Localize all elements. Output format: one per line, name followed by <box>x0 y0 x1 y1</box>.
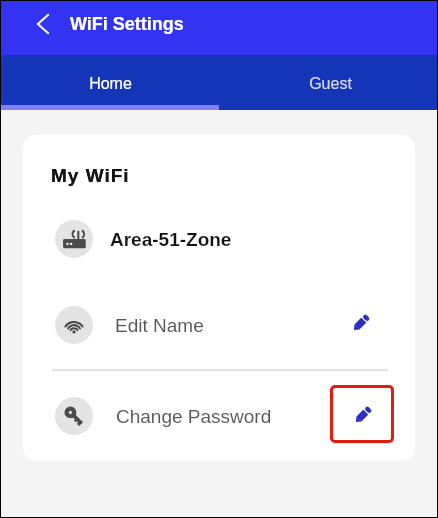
button[interactable]: Area-51-Zone <box>23 217 415 261</box>
button[interactable]: Edit name <box>345 307 377 339</box>
button[interactable]: Edit Name <box>23 303 415 347</box>
button[interactable]: Guest <box>219 55 437 110</box>
staticText: Change Password <box>116 406 272 427</box>
staticText: WiFi Settings <box>70 14 184 34</box>
button[interactable]: Change password <box>330 385 394 443</box>
staticText: Home <box>89 75 132 93</box>
staticText: My WiFi <box>51 165 130 186</box>
button[interactable]: Change Password <box>23 394 415 438</box>
button[interactable]: Back <box>24 6 60 42</box>
staticText: My WiFi <box>51 165 130 186</box>
staticText: Guest <box>309 75 352 93</box>
staticText: Edit Name <box>115 315 204 336</box>
staticText: My WiFi <box>51 165 130 186</box>
staticText: Area-51-Zone <box>110 229 232 250</box>
button[interactable]: Home <box>1 55 219 110</box>
